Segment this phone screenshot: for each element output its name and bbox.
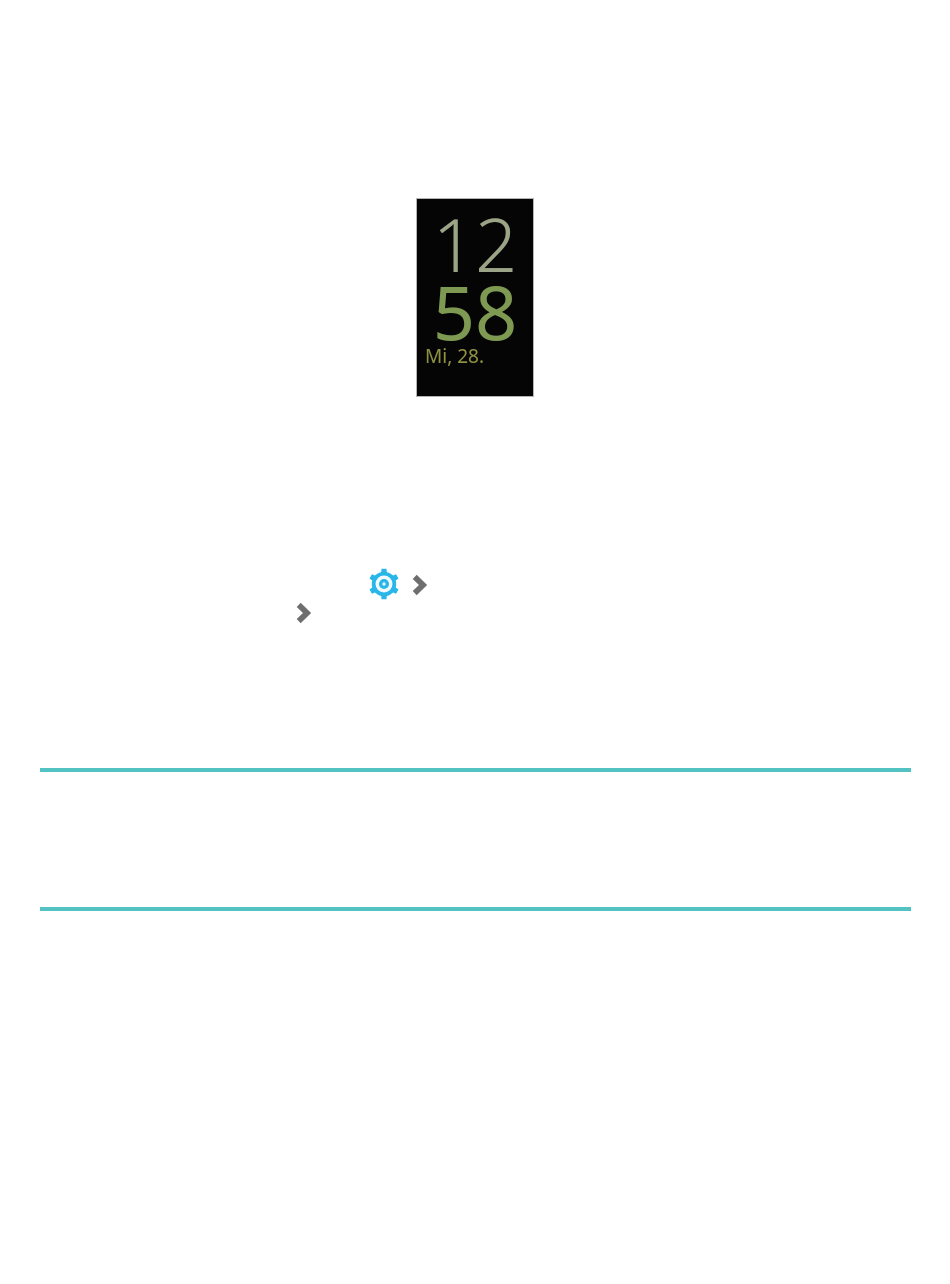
staticText: Mi, 28. [425, 343, 484, 369]
button[interactable]: Watch face settings [369, 569, 399, 599]
staticText: 58 [417, 261, 533, 362]
button[interactable]: More options [293, 601, 312, 625]
staticText: 12 [417, 193, 533, 294]
button[interactable]: Open complication settings [409, 573, 428, 597]
button[interactable]: 12 [416, 198, 534, 397]
